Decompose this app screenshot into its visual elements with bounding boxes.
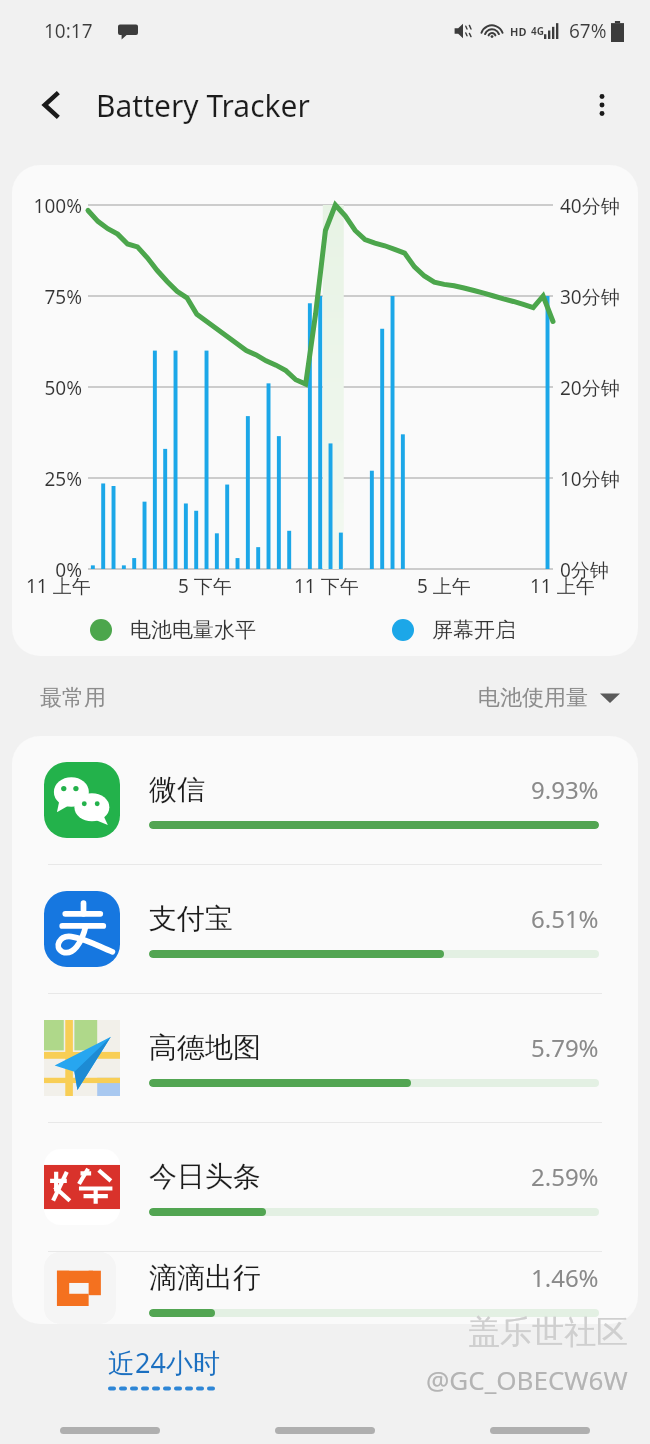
staticText: 6.51% (531, 902, 599, 935)
staticText: 10:17 (44, 18, 93, 44)
staticText: 30分钟 (560, 284, 620, 310)
staticText: 今日头条 (149, 1159, 531, 1194)
staticText: 67% (569, 18, 607, 44)
staticText: 电池使用量 (478, 684, 588, 712)
staticText: 100% (16, 193, 82, 219)
staticText: 50% (16, 375, 82, 401)
staticText: 滴滴出行 (149, 1260, 531, 1295)
staticText: Battery Tracker (96, 85, 310, 126)
staticText: 电池电量水平 (130, 617, 256, 643)
button[interactable]: 微信 (12, 736, 638, 864)
button[interactable]: 电池使用量 (478, 684, 620, 712)
staticText: 10分钟 (560, 466, 620, 492)
staticText: 40分钟 (560, 193, 620, 219)
staticText: 11 上午 (530, 573, 595, 599)
button[interactable]: 今日头条 (12, 1123, 638, 1251)
staticText: 11 上午 (26, 573, 91, 599)
staticText: 5.79% (531, 1031, 599, 1064)
staticText: 9.93% (531, 773, 599, 806)
staticText: 近24小时 (108, 1344, 220, 1381)
staticText: 盖乐世社区 (468, 1312, 628, 1352)
button[interactable]: 近24小时 (108, 1344, 220, 1391)
staticText: 75% (16, 284, 82, 310)
staticText: 25% (16, 466, 82, 492)
button[interactable]: 高德地图 (12, 994, 638, 1122)
staticText: 4G (531, 24, 544, 38)
staticText: 11 下午 (294, 573, 359, 599)
staticText: 高德地图 (149, 1030, 531, 1065)
staticText: 0% (16, 557, 82, 583)
staticText: 2.59% (531, 1160, 599, 1193)
staticText: 5 上午 (417, 573, 471, 599)
staticText: 1.46% (531, 1261, 599, 1294)
button[interactable]: Back (26, 79, 78, 131)
staticText: 支付宝 (149, 901, 531, 936)
button[interactable]: More options (576, 79, 628, 131)
staticText: @GC_OBECW6W (426, 1362, 628, 1397)
button[interactable]: 支付宝 (12, 865, 638, 993)
staticText: 屏幕开启 (432, 617, 516, 643)
staticText: 5 下午 (178, 573, 232, 599)
staticText: 微信 (149, 772, 531, 807)
staticText: 0分钟 (560, 557, 609, 583)
staticText: 20分钟 (560, 375, 620, 401)
staticText: 最常用 (40, 684, 106, 712)
button[interactable]: 滴滴出行 (12, 1252, 638, 1324)
staticText: HD (510, 24, 527, 39)
